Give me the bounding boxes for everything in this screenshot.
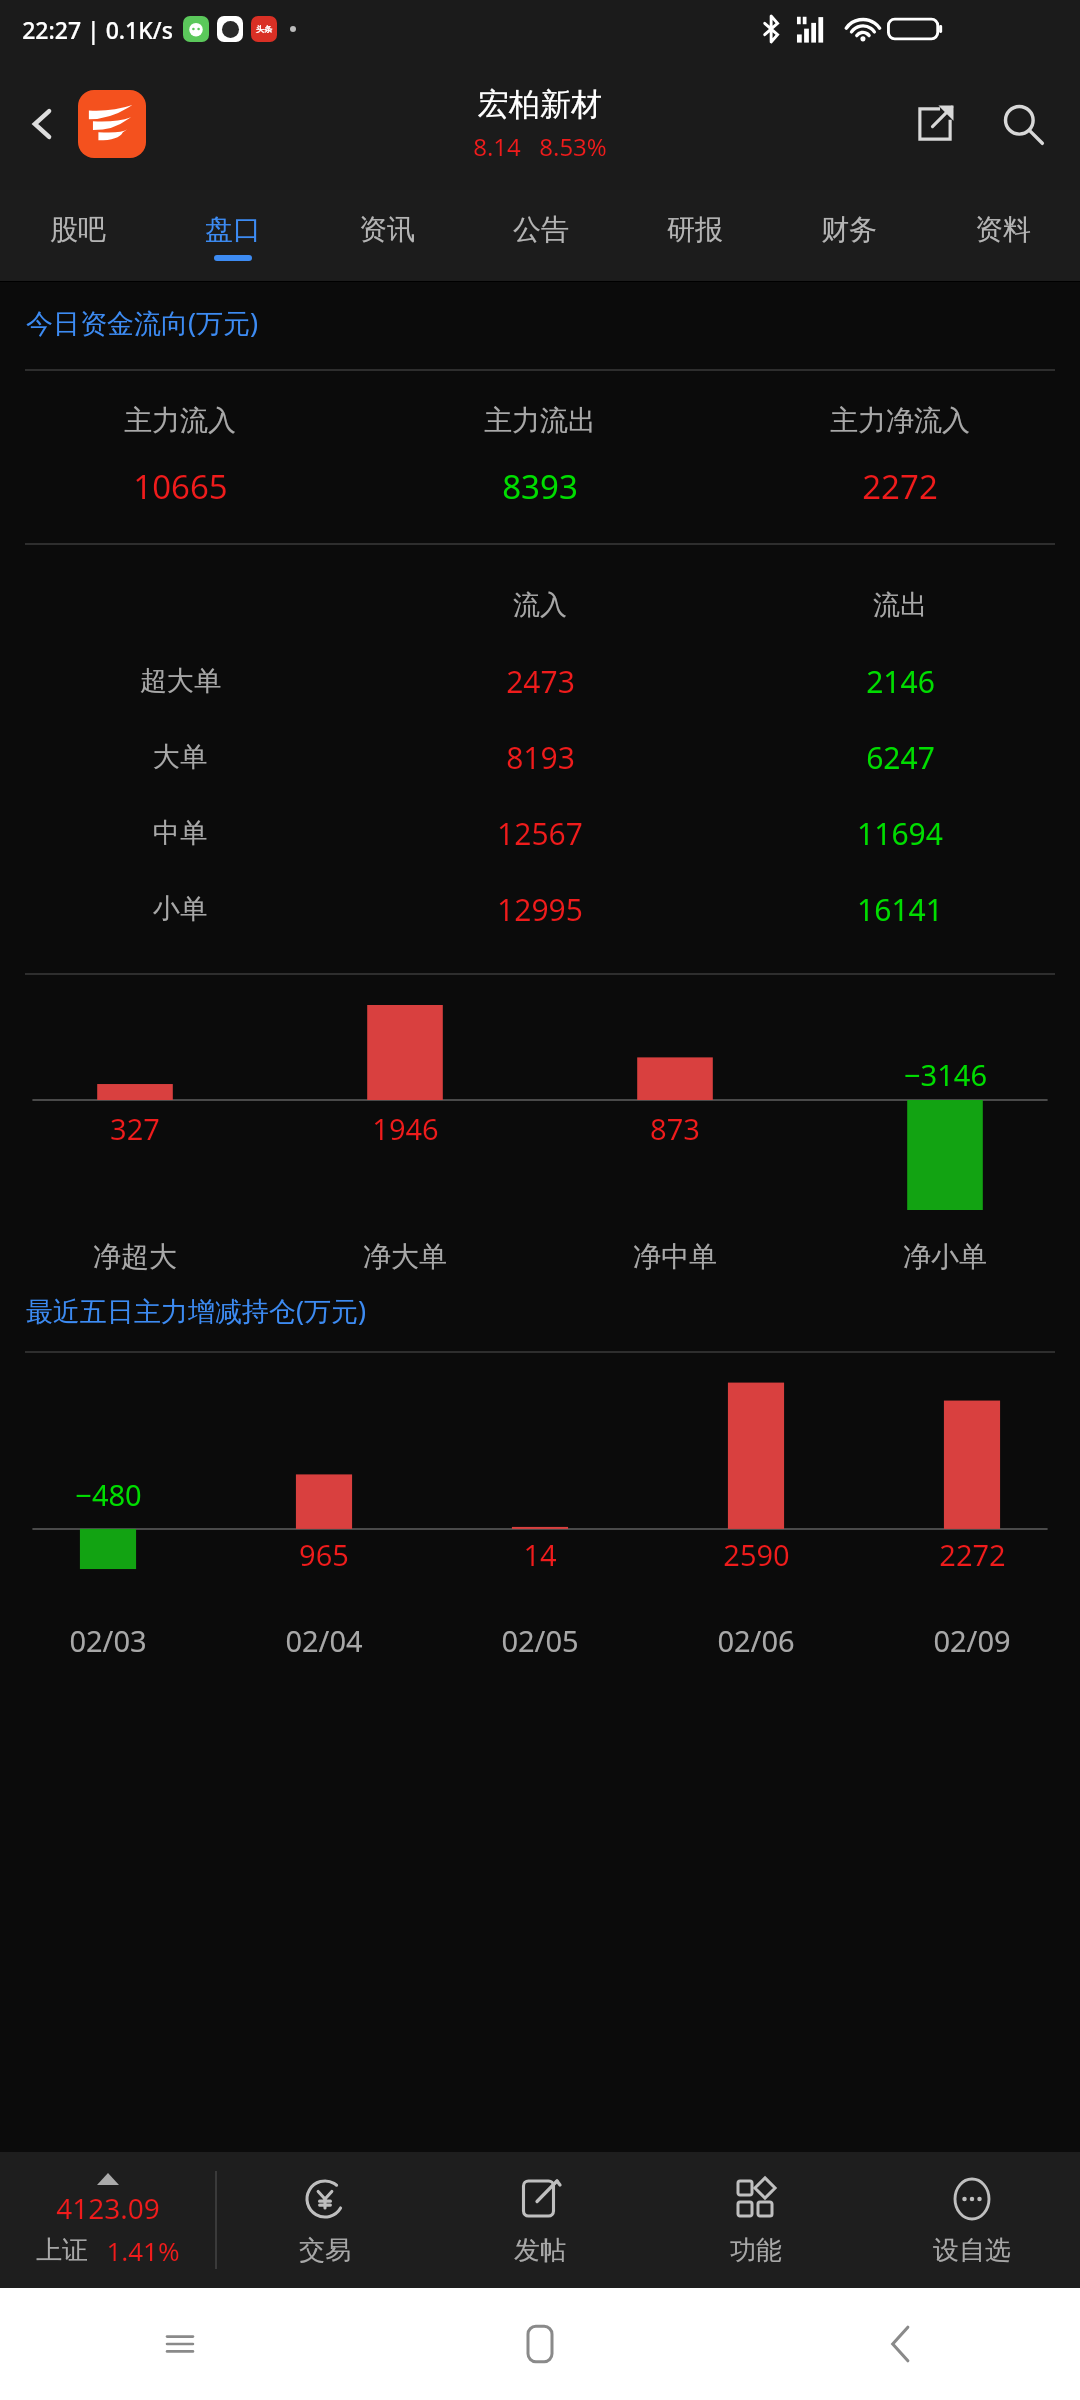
staticText: 研报 <box>667 212 723 247</box>
staticText: 中单 <box>153 816 207 850</box>
staticText: 02/03 <box>69 1621 147 1660</box>
staticText: 财务 <box>821 212 877 247</box>
staticText: 1946 <box>372 1109 439 1148</box>
button[interactable]: 交易 <box>217 2152 432 2288</box>
button[interactable]: 功能 <box>648 2152 864 2288</box>
staticText: 最近五日主力增减持仓(万元) <box>26 1292 367 1329</box>
button[interactable]: Recents <box>0 2288 360 2400</box>
staticText: 8.14 <box>473 130 521 163</box>
staticText: 主力流入 <box>124 403 236 438</box>
staticText: 965 <box>299 1535 349 1574</box>
button[interactable]: Back <box>720 2288 1080 2400</box>
staticText: 公告 <box>513 212 569 247</box>
staticText: 上证 <box>36 2234 88 2267</box>
button[interactable]: 股吧 <box>0 190 155 282</box>
staticText: 小单 <box>153 892 207 926</box>
staticText: 流出 <box>873 588 927 622</box>
staticText: 盘口 <box>205 212 261 247</box>
staticText: 2590 <box>723 1535 790 1574</box>
staticText: 宏柏新材 <box>478 85 602 124</box>
staticText: 02/06 <box>717 1621 795 1660</box>
button[interactable]: 研报 <box>618 190 772 282</box>
staticText: 今日资金流向(万元) <box>26 304 259 341</box>
staticText: 8.53% <box>539 130 607 163</box>
staticText: 主力流出 <box>484 403 596 438</box>
staticText: −3146 <box>904 1055 987 1094</box>
button[interactable]: 4123.09 <box>0 2152 215 2288</box>
staticText: 02/04 <box>285 1621 363 1660</box>
staticText: 11694 <box>857 813 943 854</box>
staticText: 22:27 | 0.1K/s <box>22 14 173 45</box>
staticText: 头条 <box>256 24 272 34</box>
staticText: 16141 <box>857 889 943 930</box>
staticText: 流入 <box>513 588 567 622</box>
staticText: 净超大 <box>93 1239 177 1274</box>
staticText: 1.41% <box>106 2233 180 2268</box>
staticText: 净大单 <box>363 1239 447 1274</box>
staticText: 02/05 <box>501 1621 579 1660</box>
button[interactable]: Home <box>360 2288 720 2400</box>
staticText: 8393 <box>502 464 578 509</box>
staticText: 10665 <box>133 464 228 509</box>
staticText: 873 <box>650 1109 700 1148</box>
button[interactable]: 盘口 <box>155 190 310 282</box>
staticText: 功能 <box>730 2234 782 2267</box>
button[interactable]: Back <box>8 89 78 159</box>
button[interactable]: 资讯 <box>310 190 464 282</box>
staticText: 12995 <box>497 889 583 930</box>
button[interactable]: 公告 <box>464 190 618 282</box>
button[interactable]: 资料 <box>926 190 1080 282</box>
staticText: 327 <box>110 1109 160 1148</box>
staticText: 6247 <box>866 737 935 778</box>
staticText: 交易 <box>299 2234 351 2267</box>
staticText: 2146 <box>866 661 935 702</box>
button[interactable]: Search <box>988 89 1058 159</box>
button[interactable]: Share <box>900 89 970 159</box>
staticText: −480 <box>75 1475 142 1514</box>
staticText: 资讯 <box>359 212 415 247</box>
button[interactable]: 财务 <box>772 190 926 282</box>
staticText: 主力净流入 <box>830 403 970 438</box>
button[interactable]: App logo <box>78 90 146 158</box>
staticText: 净小单 <box>903 1239 987 1274</box>
staticText: 12567 <box>497 813 583 854</box>
staticText: 2272 <box>862 464 938 509</box>
staticText: 超大单 <box>140 664 221 698</box>
button[interactable]: 发帖 <box>432 2152 648 2288</box>
staticText: 8193 <box>506 737 575 778</box>
staticText: 设自选 <box>933 2234 1011 2267</box>
staticText: 股吧 <box>50 212 106 247</box>
staticText: 净中单 <box>633 1239 717 1274</box>
staticText: 02/09 <box>933 1621 1011 1660</box>
staticText: 大单 <box>153 740 207 774</box>
button[interactable]: 设自选 <box>864 2152 1080 2288</box>
staticText: 4123.09 <box>56 2189 160 2227</box>
staticText: 2272 <box>939 1535 1006 1574</box>
staticText: 2473 <box>506 661 575 702</box>
staticText: 14 <box>523 1535 557 1574</box>
staticText: 资料 <box>975 212 1031 247</box>
staticText: 发帖 <box>514 2234 566 2267</box>
